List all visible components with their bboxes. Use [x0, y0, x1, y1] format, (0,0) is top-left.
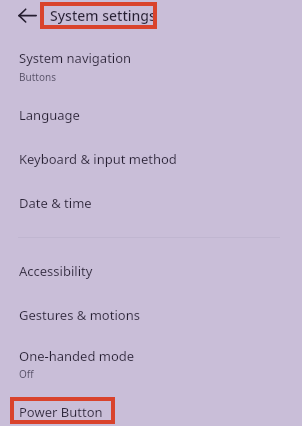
button[interactable]: System settings	[44, 0, 162, 32]
button[interactable]: Language	[0, 92, 302, 136]
staticText: Language	[19, 106, 80, 124]
button[interactable]: Power Button	[0, 390, 302, 426]
staticText: Power Button	[19, 403, 103, 421]
button[interactable]: Date & time	[0, 180, 302, 224]
staticText: Off	[19, 367, 34, 381]
staticText: System settings	[50, 6, 156, 25]
staticText: Gestures & motions	[19, 306, 140, 324]
staticText: One-handed mode	[19, 347, 135, 365]
button[interactable]: Navigate up	[13, 3, 39, 29]
button[interactable]: Gestures & motions	[0, 293, 302, 336]
button[interactable]: System navigation	[0, 40, 302, 92]
staticText: Accessibility	[19, 262, 93, 280]
button[interactable]: Keyboard & input method	[0, 136, 302, 180]
staticText: System navigation	[19, 49, 132, 67]
button[interactable]: One-handed mode	[0, 336, 302, 390]
staticText: Keyboard & input method	[19, 150, 177, 168]
button[interactable]: Accessibility	[0, 250, 302, 293]
staticText: Date & time	[19, 194, 92, 212]
staticText: Buttons	[19, 70, 56, 84]
